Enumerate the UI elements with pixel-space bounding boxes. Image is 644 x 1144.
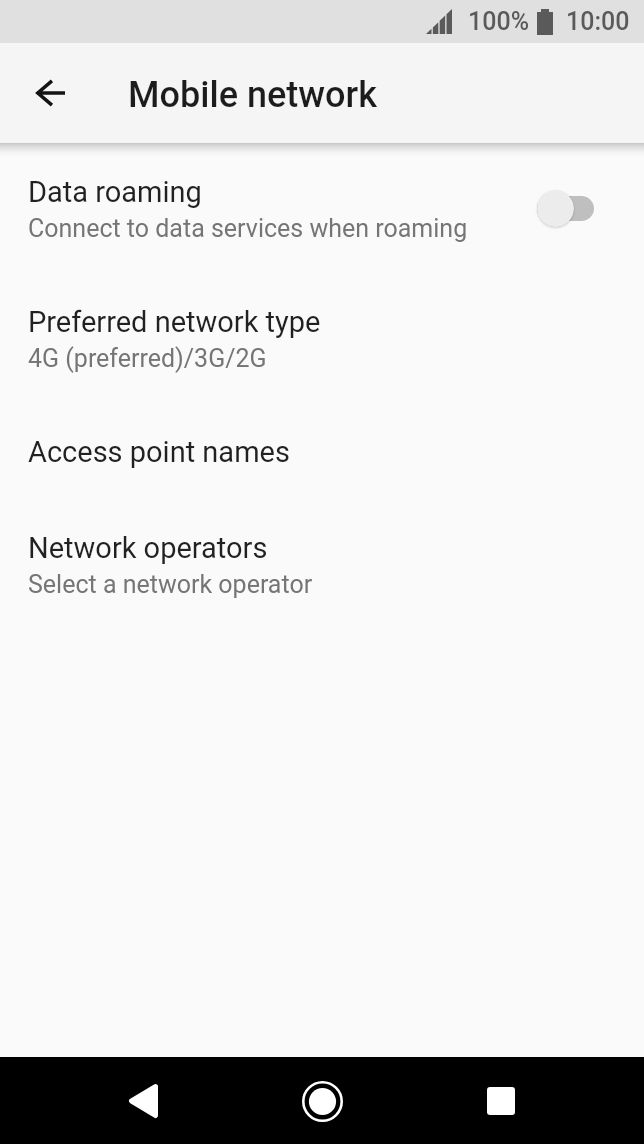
staticText: Network operators xyxy=(28,531,268,565)
button[interactable]: Data roaming xyxy=(0,143,644,273)
button[interactable]: Preferred network type xyxy=(0,273,644,403)
staticText: Connect to data services when roaming xyxy=(28,214,468,243)
button[interactable]: Recent apps xyxy=(458,1058,544,1144)
staticText: Preferred network type xyxy=(28,305,321,339)
button[interactable]: Back xyxy=(100,1058,186,1144)
staticText: Mobile network xyxy=(128,74,378,116)
button[interactable]: Network operators xyxy=(0,499,644,629)
staticText: Access point names xyxy=(28,435,290,469)
button[interactable]: Access point names xyxy=(0,403,644,499)
staticText: 10:00 xyxy=(566,7,630,36)
staticText: 100% xyxy=(468,7,529,36)
staticText: Data roaming xyxy=(28,175,202,209)
staticText: Select a network operator xyxy=(28,570,313,599)
button[interactable]: Data roaming toggle xyxy=(537,186,594,230)
staticText: 4G (preferred)/3G/2G xyxy=(28,344,267,373)
button[interactable]: Back xyxy=(14,57,86,129)
button[interactable]: Home xyxy=(279,1058,365,1144)
